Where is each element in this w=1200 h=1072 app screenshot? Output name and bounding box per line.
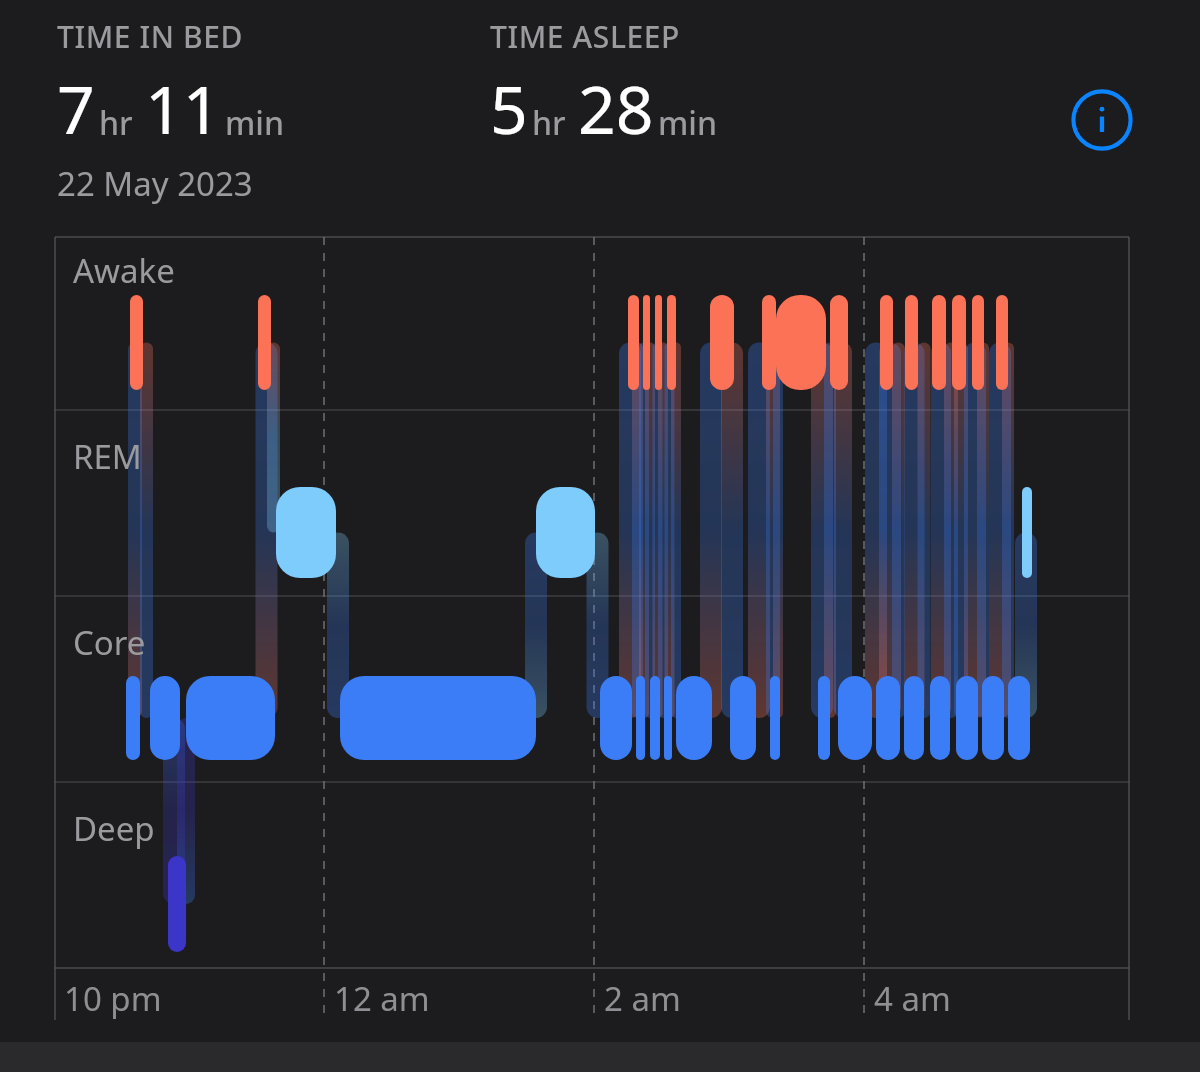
staticText: min — [658, 101, 718, 145]
staticText: REM — [73, 434, 142, 479]
staticText: 2 am — [604, 976, 681, 1021]
staticText: Awake — [73, 248, 175, 293]
staticText: 7 — [57, 63, 95, 153]
staticText: TIME ASLEEP — [490, 16, 681, 57]
staticText: 4 am — [874, 976, 951, 1021]
staticText: 22 May 2023 — [57, 161, 253, 206]
button[interactable]: Info — [1068, 86, 1136, 154]
staticText: TIME IN BED — [57, 16, 244, 57]
staticText: 10 pm — [64, 976, 162, 1021]
staticText: Core — [73, 620, 146, 665]
staticText: min — [225, 101, 285, 145]
staticText: 12 am — [334, 976, 430, 1021]
staticText: 28 — [578, 63, 654, 153]
staticText: 5 — [490, 63, 528, 153]
staticText: Deep — [73, 806, 155, 851]
staticText: hr — [532, 101, 566, 145]
staticText: 11 — [145, 63, 221, 153]
staticText: hr — [99, 101, 133, 145]
